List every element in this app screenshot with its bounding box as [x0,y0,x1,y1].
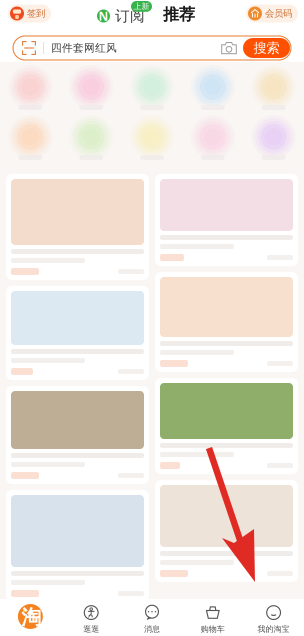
button[interactable]: 我的淘宝 [243,601,304,634]
button[interactable]: 首页 [0,599,61,636]
staticText: 购物车 [201,624,225,634]
button[interactable]: 购物车 [182,601,243,634]
button[interactable]: 逛逛 [61,601,122,634]
button[interactable]: 会员码 [246,4,298,22]
staticText: 淘 [21,605,41,630]
staticText: 订阅 [115,7,145,25]
staticText: 推荐 [163,5,195,24]
staticText: 搜索 [253,40,279,56]
staticText: N [98,8,108,24]
button[interactable]: 签到 [8,4,51,22]
button[interactable]: 四件套网红风 [13,36,291,60]
button[interactable]: 消息 [122,601,182,634]
staticText: 我的淘宝 [258,624,290,634]
staticText: 四件套网红风 [51,41,117,54]
staticText: 消息 [144,624,160,634]
staticText: 签到 [27,8,45,19]
staticText: 逛逛 [83,624,99,634]
staticText: 会员码 [265,8,292,19]
button[interactable]: N [97,2,145,25]
staticText: 上新 [133,1,149,11]
